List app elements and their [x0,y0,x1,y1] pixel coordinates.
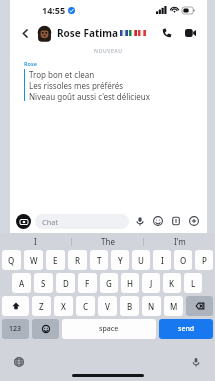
staticText: U [138,255,144,266]
button[interactable]: W [24,250,43,270]
button[interactable]: Emoji [151,214,165,228]
button[interactable]: D [56,273,75,293]
button[interactable]: Back [16,24,34,42]
button[interactable]: Q [2,250,21,270]
button[interactable]: O [174,250,192,270]
staticText: Y [118,255,123,266]
staticText: J [150,278,153,289]
staticText: Rose [24,60,37,67]
staticText: F [85,278,90,289]
staticText: Les rissoles mes préférés [29,80,124,91]
button[interactable]: Add attachment [187,214,201,228]
staticText: W [30,255,38,266]
button[interactable]: R [68,250,87,270]
staticText: Q [8,255,15,266]
staticText: G [106,278,112,289]
button[interactable]: N [142,296,161,316]
staticText: N [148,301,155,312]
button[interactable]: H [121,273,139,293]
button[interactable]: Voice message [133,214,147,228]
staticText: space [99,324,119,334]
button[interactable]: Chat [42,214,129,229]
button[interactable]: space [62,319,156,339]
staticText: NOUVEAU [94,48,123,55]
staticText: B [127,301,133,312]
button[interactable]: I'm [144,233,215,250]
button[interactable]: S [34,273,53,293]
staticText: The [101,236,115,247]
staticText: X [61,301,66,312]
staticText: K [169,278,175,289]
staticText: I [34,236,37,247]
button[interactable]: I [0,233,71,250]
button[interactable]: F [78,273,97,293]
button[interactable]: Stickers [169,214,183,228]
staticText: T [97,255,102,266]
staticText: M [170,301,178,312]
button[interactable]: Emoji keyboard [32,319,59,339]
button[interactable]: X [54,296,73,316]
staticText: E [53,255,58,266]
staticText: Rose Fatima [57,26,118,40]
button[interactable]: L [184,273,202,293]
button[interactable]: T [90,250,108,270]
staticText: I'm [174,236,186,247]
staticText: S [41,278,46,289]
button[interactable]: J [142,273,160,293]
button[interactable]: I [153,250,171,270]
button[interactable]: Dictation [189,355,203,369]
button[interactable]: Change language [12,355,26,369]
staticText: I [161,255,164,266]
button[interactable]: Backspace [186,296,213,316]
button[interactable]: V [98,296,117,316]
staticText: V [105,301,110,312]
staticText: R [75,255,81,266]
button[interactable]: Video call [181,24,199,42]
button[interactable]: The [72,233,143,250]
staticText: P [202,255,207,266]
button[interactable]: U [132,250,150,270]
staticText: L [191,278,196,289]
staticText: D [63,278,69,289]
staticText: C [83,301,89,312]
staticText: O [180,255,187,266]
staticText: 123 [9,324,22,334]
button[interactable]: Camera [16,214,31,229]
staticText: H [127,278,133,289]
staticText: Chat [42,217,59,227]
button[interactable]: Y [111,250,129,270]
staticText: Z [39,301,44,312]
button[interactable]: G [100,273,118,293]
button[interactable]: M [164,296,183,316]
button[interactable]: P [195,250,213,270]
staticText: A [19,278,25,289]
button[interactable]: B [120,296,139,316]
button[interactable]: Z [32,296,51,316]
staticText: 14:55 [42,4,66,16]
staticText: send [178,324,195,334]
button[interactable]: Shift [2,296,29,316]
staticText: Niveau goût aussi c'est délicieux [29,91,150,102]
button[interactable]: K [163,273,181,293]
button[interactable]: 123 [2,319,29,339]
button[interactable]: C [76,296,95,316]
button[interactable]: E [46,250,65,270]
button[interactable]: send [159,319,213,339]
button[interactable]: Call [158,24,176,42]
button[interactable]: A [12,273,31,293]
staticText: Trop bon et clean [29,69,95,80]
